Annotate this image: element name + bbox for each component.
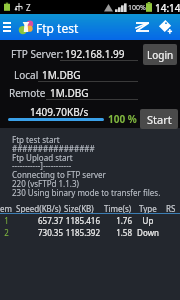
staticText: Size(KB) bbox=[64, 203, 94, 214]
staticText: Ftp Upload start bbox=[12, 152, 73, 163]
staticText: Speed(KB/s) bbox=[16, 203, 62, 214]
staticText: Up bbox=[134, 215, 162, 226]
staticText: Remote bbox=[9, 86, 46, 100]
staticText: 657.37 bbox=[16, 215, 63, 226]
staticText: 1185.416 bbox=[64, 215, 100, 226]
staticText: 230 Using binary mode to transfer files. bbox=[12, 187, 161, 198]
staticText: 100 % bbox=[108, 112, 137, 126]
staticText: Login bbox=[147, 48, 174, 62]
staticText: Ftp test start bbox=[12, 134, 60, 145]
staticText: 1 bbox=[1, 215, 12, 226]
staticText: 730.35 bbox=[16, 227, 63, 238]
staticText: 14:14 bbox=[155, 1, 180, 15]
staticText: em bbox=[0, 203, 12, 214]
staticText: 1.58 bbox=[104, 227, 132, 238]
staticText: Time(s) bbox=[104, 203, 132, 214]
button[interactable]: Zello bbox=[130, 14, 154, 40]
button[interactable]: Add tag bbox=[154, 14, 178, 40]
staticText: Type bbox=[139, 203, 157, 214]
staticText: Ftp test bbox=[36, 20, 79, 36]
button[interactable]: 2 bbox=[0, 227, 180, 239]
staticText: 2 bbox=[1, 227, 12, 238]
staticText: Z bbox=[26, 2, 31, 13]
button[interactable]: Start bbox=[140, 109, 178, 129]
staticText: 1M.DBG bbox=[50, 86, 89, 100]
button[interactable]: Open navigation menu bbox=[0, 14, 17, 40]
staticText: Down bbox=[134, 227, 162, 238]
staticText: FTP Server: bbox=[11, 47, 64, 61]
staticText: -----------]----------- bbox=[12, 160, 72, 171]
staticText: 100% bbox=[128, 3, 146, 13]
button[interactable]: 1 bbox=[0, 215, 180, 227]
staticText: Start bbox=[147, 112, 172, 127]
staticText: Local bbox=[14, 68, 39, 82]
staticText: Connecting to FTP server bbox=[12, 169, 106, 180]
staticText: 220 (vsFTPd 1.1.3) bbox=[12, 178, 79, 189]
staticText: 1.76 bbox=[104, 215, 132, 226]
staticText: 1409.70KB/s bbox=[30, 105, 89, 119]
staticText: 192.168.1.99 bbox=[65, 47, 125, 61]
staticText: 1M.DBG bbox=[42, 68, 81, 82]
staticText: ################ bbox=[12, 143, 95, 154]
staticText: RS bbox=[166, 203, 176, 214]
button[interactable]: Login bbox=[143, 44, 177, 65]
staticText: 1185.392 bbox=[64, 227, 100, 238]
